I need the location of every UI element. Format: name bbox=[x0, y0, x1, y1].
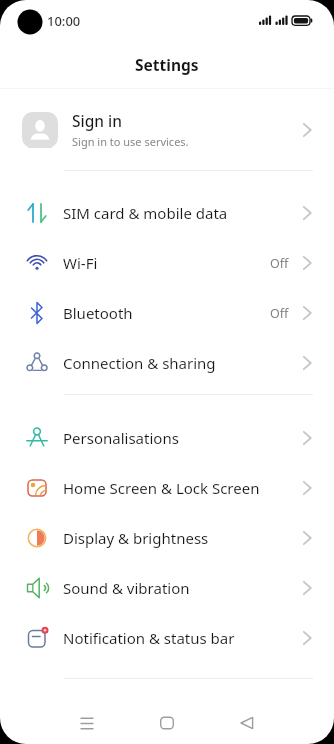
button[interactable] bbox=[227, 703, 267, 743]
staticText: Off bbox=[270, 255, 289, 272]
button[interactable]: Sound & vibration bbox=[0, 563, 334, 613]
staticText: Connection & sharing bbox=[63, 353, 216, 373]
staticText: Notification & status bar bbox=[63, 628, 235, 648]
button[interactable]: Connection & sharing bbox=[0, 338, 334, 388]
staticText: Display & brightness bbox=[63, 528, 209, 548]
staticText: Sound & vibration bbox=[63, 578, 190, 598]
button[interactable]: Notification & status bar bbox=[0, 613, 334, 663]
button[interactable]: Display & brightness bbox=[0, 513, 334, 563]
button[interactable]: Home Screen & Lock Screen bbox=[0, 463, 334, 513]
button[interactable] bbox=[67, 703, 107, 743]
button[interactable]: Wi-Fi bbox=[0, 238, 334, 288]
staticText: Sign in to use services. bbox=[72, 134, 189, 149]
staticText: 10:00 bbox=[47, 12, 81, 30]
button[interactable]: Sign in bbox=[0, 89, 334, 170]
staticText: Wi-Fi bbox=[63, 253, 98, 273]
staticText: SIM card & mobile data bbox=[63, 203, 228, 223]
staticText: Home Screen & Lock Screen bbox=[63, 478, 260, 498]
button[interactable]: Personalisations bbox=[0, 413, 334, 463]
button[interactable]: SIM card & mobile data bbox=[0, 188, 334, 238]
button[interactable] bbox=[147, 703, 187, 743]
staticText: Personalisations bbox=[63, 428, 179, 448]
button[interactable]: Bluetooth bbox=[0, 288, 334, 338]
staticText: Sign in bbox=[72, 110, 122, 131]
staticText: Settings bbox=[135, 54, 199, 75]
staticText: Bluetooth bbox=[63, 303, 133, 323]
staticText: Off bbox=[270, 305, 289, 322]
